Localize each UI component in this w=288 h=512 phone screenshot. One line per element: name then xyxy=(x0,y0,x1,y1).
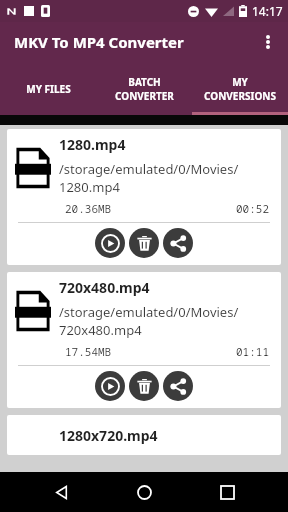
staticText: 1280.mp4 xyxy=(59,135,126,154)
staticText: CONVERTER xyxy=(115,89,174,103)
button[interactable]: Play xyxy=(95,371,125,401)
button[interactable]: Delete xyxy=(129,371,159,401)
staticText: 00:52 xyxy=(236,201,269,216)
button[interactable]: 1280.mp4 xyxy=(7,129,281,265)
staticText: /storage/emulated/0/Movies/ xyxy=(59,160,239,178)
staticText: MY xyxy=(232,75,248,89)
staticText: 20.36MB xyxy=(65,201,112,216)
staticText: 720x480.mp4 xyxy=(59,321,142,339)
button[interactable]: Play xyxy=(95,228,125,258)
button[interactable]: Share xyxy=(163,371,193,401)
button[interactable]: Delete xyxy=(129,228,159,258)
staticText: 720x480.mp4 xyxy=(59,278,150,297)
button[interactable]: MY xyxy=(192,62,288,115)
staticText: MKV To MP4 Converter xyxy=(14,32,184,52)
button[interactable]: Back xyxy=(39,472,83,512)
button[interactable]: Recents xyxy=(205,472,249,512)
staticText: MY FILES xyxy=(26,82,71,96)
staticText: 17.54MB xyxy=(65,344,112,359)
staticText: 1280x720.mp4 xyxy=(59,426,158,445)
button[interactable]: Home xyxy=(122,472,166,512)
staticText: CONVERSIONS xyxy=(204,89,276,103)
staticText: BATCH xyxy=(128,75,161,89)
staticText: 1280.mp4 xyxy=(59,178,120,196)
staticText: 14:17 xyxy=(252,3,283,19)
button[interactable]: Share xyxy=(163,228,193,258)
staticText: /storage/emulated/0/Movies/ xyxy=(59,303,239,321)
button[interactable]: BATCH xyxy=(96,62,192,115)
button[interactable]: 720x480.mp4 xyxy=(7,272,281,408)
button[interactable]: MY FILES xyxy=(0,62,96,115)
staticText: 01:11 xyxy=(236,344,269,359)
button[interactable]: 1280x720.mp4 xyxy=(7,415,281,455)
button[interactable]: More options xyxy=(248,22,288,62)
